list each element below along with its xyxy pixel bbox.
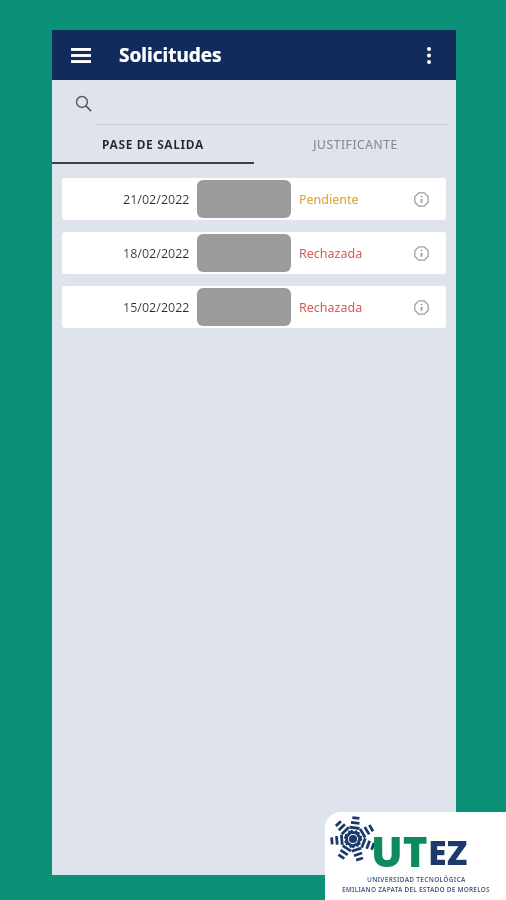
- button[interactable]: Search: [68, 88, 98, 118]
- button[interactable]: Open navigation menu: [64, 38, 98, 72]
- button[interactable]: JUSTIFICANTE: [254, 125, 456, 162]
- staticText: EZ: [428, 829, 468, 875]
- staticText: 15/02/2022: [123, 299, 190, 316]
- staticText: PASE DE SALIDA: [102, 136, 204, 152]
- staticText: UNIVERSIDAD TECNOLÓGICA: [367, 875, 466, 884]
- staticText: JUSTIFICANTE: [313, 136, 398, 152]
- button[interactable]: Details: [408, 240, 434, 266]
- button[interactable]: PASE DE SALIDA: [52, 125, 254, 162]
- staticText: 21/02/2022: [123, 191, 190, 208]
- button[interactable]: Details: [408, 294, 434, 320]
- button[interactable]: 15/02/2022: [62, 286, 446, 328]
- button[interactable]: More options: [412, 38, 446, 72]
- staticText: Pendiente: [299, 191, 359, 208]
- staticText: UT: [371, 822, 428, 879]
- staticText: 18/02/2022: [123, 245, 190, 262]
- staticText: Solicitudes: [119, 42, 222, 68]
- staticText: Rechazada: [299, 299, 363, 316]
- button[interactable]: Details: [408, 186, 434, 212]
- staticText: EMILIANO ZAPATA DEL ESTADO DE MORELOS: [342, 885, 490, 894]
- button[interactable]: 21/02/2022: [62, 178, 446, 220]
- staticText: Rechazada: [299, 245, 363, 262]
- button[interactable]: 18/02/2022: [62, 232, 446, 274]
